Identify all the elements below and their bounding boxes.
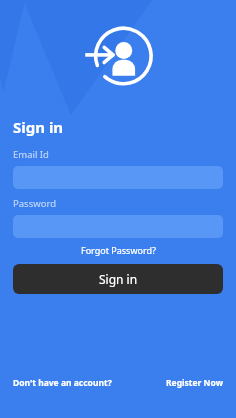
staticText: Sign in <box>99 271 138 287</box>
staticText: Forgot Password? <box>81 244 156 256</box>
other: Sign in logo <box>82 20 154 92</box>
button[interactable]: Don't have an account? <box>13 375 112 391</box>
button[interactable]: Forgot Password? <box>77 242 160 258</box>
staticText: Don't have an account? <box>13 377 112 389</box>
button[interactable]: Sign in <box>13 264 223 294</box>
button[interactable]: Register Now <box>166 375 223 391</box>
staticText: Register Now <box>166 377 223 389</box>
staticText: Email Id <box>13 148 49 161</box>
staticText: Password <box>13 197 56 210</box>
staticText: Sign in <box>13 117 64 137</box>
